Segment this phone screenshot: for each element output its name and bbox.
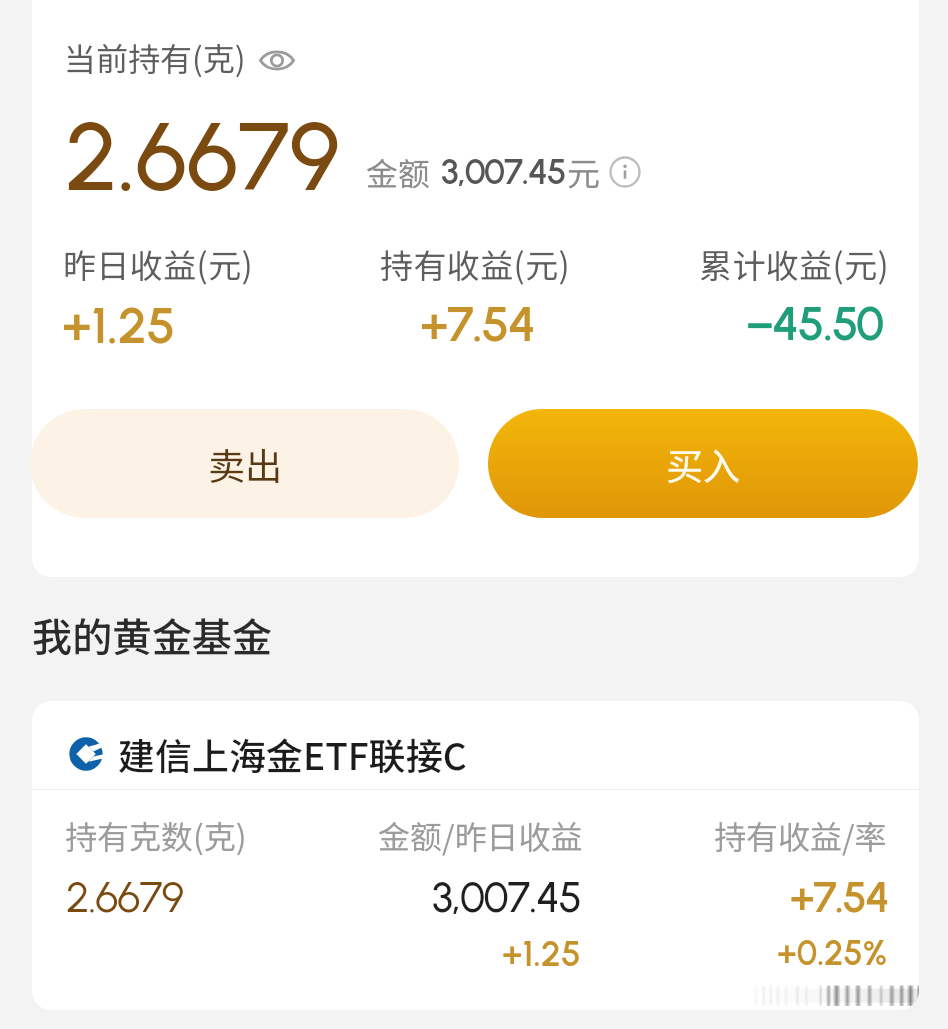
staticText: 金额/昨日收益 — [378, 812, 583, 858]
staticText: 持有克数(克) — [65, 812, 247, 858]
staticText: +0.25% — [32, 933, 887, 974]
other: Hide balance — [259, 51, 295, 70]
staticText: 金额 — [366, 149, 431, 195]
staticText: +1.25 — [62, 295, 176, 356]
button[interactable]: 买入 — [488, 409, 918, 518]
button[interactable]: 金额 — [366, 148, 641, 196]
staticText: 当前持有(克) — [64, 34, 246, 80]
staticText: 昨日收益(元) — [63, 240, 254, 288]
staticText: 2.6679 — [66, 871, 184, 923]
staticText: 3,007.45 — [441, 151, 566, 193]
staticText: −45.50 — [0, 295, 883, 351]
staticText: 持有收益/率 — [714, 812, 887, 858]
staticText: 我的黄金基金 — [32, 606, 272, 664]
staticText: 卖出 — [208, 437, 282, 491]
staticText: 累计收益(元) — [699, 240, 890, 288]
staticText: 买入 — [666, 437, 740, 491]
staticText: +1.25 — [32, 933, 581, 975]
other: Info — [609, 156, 641, 188]
staticText: 3,007.45 — [32, 872, 581, 922]
staticText: 2.6679 — [65, 99, 340, 214]
staticText: +7.54 — [420, 294, 535, 353]
staticText: +7.54 — [32, 871, 888, 923]
button[interactable]: 当前持有(克) — [64, 34, 295, 80]
button[interactable]: 卖出 — [30, 409, 459, 518]
button[interactable]: 建信上海金ETF联接C — [32, 701, 919, 1010]
staticText: 建信上海金ETF联接C — [118, 727, 467, 781]
staticText: 持有收益(元) — [380, 240, 571, 288]
staticText: 元 — [567, 148, 600, 196]
